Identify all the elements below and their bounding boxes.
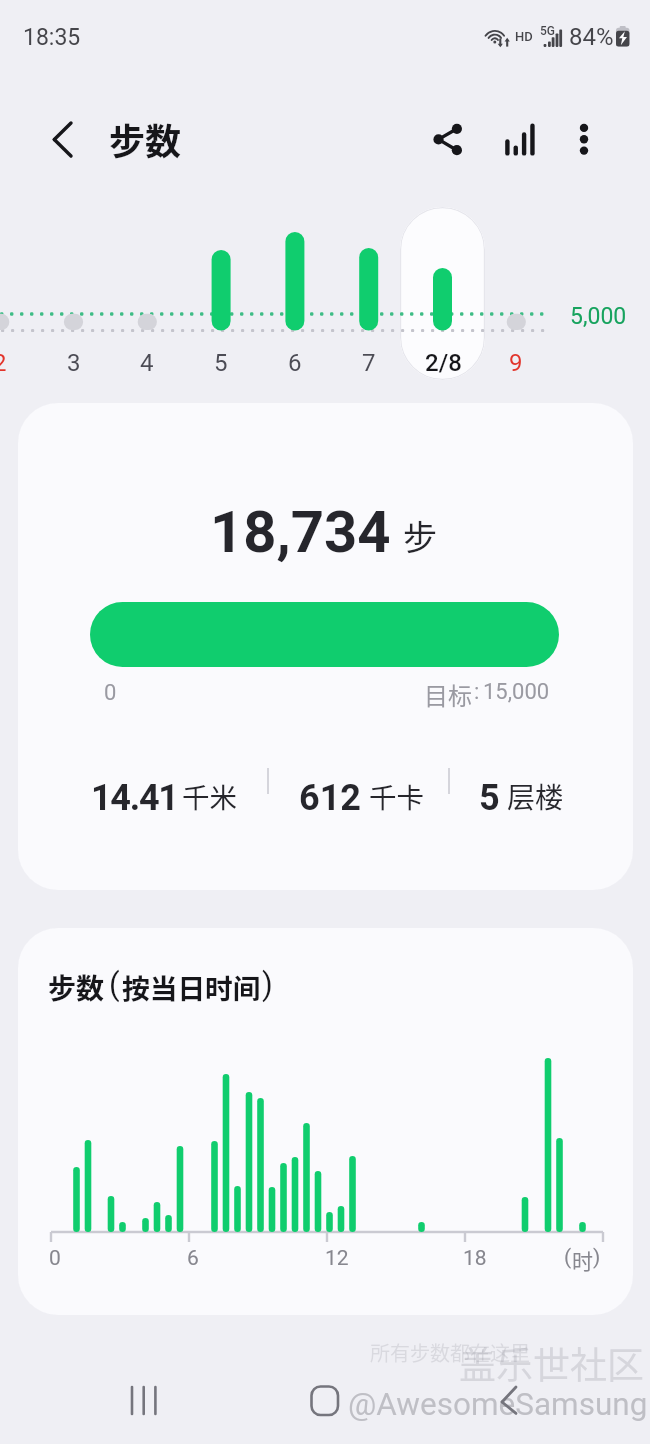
staticText: 目标	[424, 677, 472, 712]
staticText: 3	[67, 349, 81, 377]
staticText: (	[564, 1245, 572, 1270]
staticText: HD	[515, 29, 533, 44]
staticText: 15,000	[483, 679, 550, 705]
staticText: 612	[299, 777, 361, 819]
staticText: 0	[49, 1246, 61, 1271]
staticText: 2	[0, 349, 7, 377]
button[interactable]: Share	[415, 116, 463, 164]
other: Wi-Fi	[482, 22, 512, 50]
button[interactable]: 5	[186, 346, 256, 380]
staticText: 层楼	[507, 776, 564, 817]
staticText: 14.41	[91, 777, 178, 819]
other: Battery 84 percent, charging	[615, 26, 631, 48]
button[interactable]: 步数	[18, 928, 633, 1315]
button[interactable]: 2	[0, 346, 35, 380]
button[interactable]: 9	[481, 346, 551, 380]
staticText: 时	[572, 1245, 593, 1275]
staticText: 7	[362, 349, 376, 377]
staticText: 按当日时间	[122, 967, 261, 1007]
button[interactable]: 3	[39, 346, 109, 380]
button[interactable]: 7	[334, 346, 404, 380]
staticText: 5G	[540, 24, 555, 38]
button[interactable]: Home	[300, 1376, 352, 1426]
staticText: 5	[214, 349, 228, 377]
staticText: 步数	[48, 967, 105, 1008]
button[interactable]: 4	[112, 346, 182, 380]
staticText: 18:35	[23, 24, 81, 51]
staticText: 千米	[182, 776, 237, 816]
staticText: 9	[509, 349, 523, 377]
staticText: 5,000	[570, 303, 627, 330]
staticText: 6	[187, 1246, 199, 1271]
staticText: 84%	[569, 23, 614, 51]
button[interactable]: 18,734	[18, 403, 633, 890]
staticText: 0	[104, 680, 117, 706]
staticText: 所有步数都在这里	[370, 1338, 530, 1367]
staticText: 18	[463, 1246, 487, 1271]
staticText: 千卡	[369, 776, 424, 816]
staticText: 2/8	[425, 349, 462, 377]
staticText: (	[109, 966, 120, 1002]
button[interactable]: Recent apps	[118, 1376, 170, 1426]
button[interactable]: Statistics	[496, 116, 544, 164]
staticText: 5	[479, 777, 500, 819]
staticText: )	[593, 1245, 601, 1270]
staticText: 步	[403, 511, 437, 560]
button[interactable]: 2/8	[408, 346, 478, 380]
staticText: 18,734	[210, 498, 391, 566]
button[interactable]: More options	[560, 116, 608, 164]
staticText: :	[474, 679, 480, 705]
staticText: @AwesomeSamsung	[348, 1386, 648, 1423]
staticText: )	[262, 966, 273, 1002]
button[interactable]	[400, 207, 485, 380]
staticText: 6	[288, 349, 302, 377]
staticText: 12	[325, 1246, 349, 1271]
button[interactable]: Go back	[486, 1376, 538, 1426]
staticText: 盖乐世社区	[459, 1336, 644, 1390]
staticText: 步数	[109, 113, 182, 165]
button[interactable]: 6	[260, 346, 330, 380]
button[interactable]: Back	[36, 115, 84, 163]
staticText: 4	[140, 349, 154, 377]
